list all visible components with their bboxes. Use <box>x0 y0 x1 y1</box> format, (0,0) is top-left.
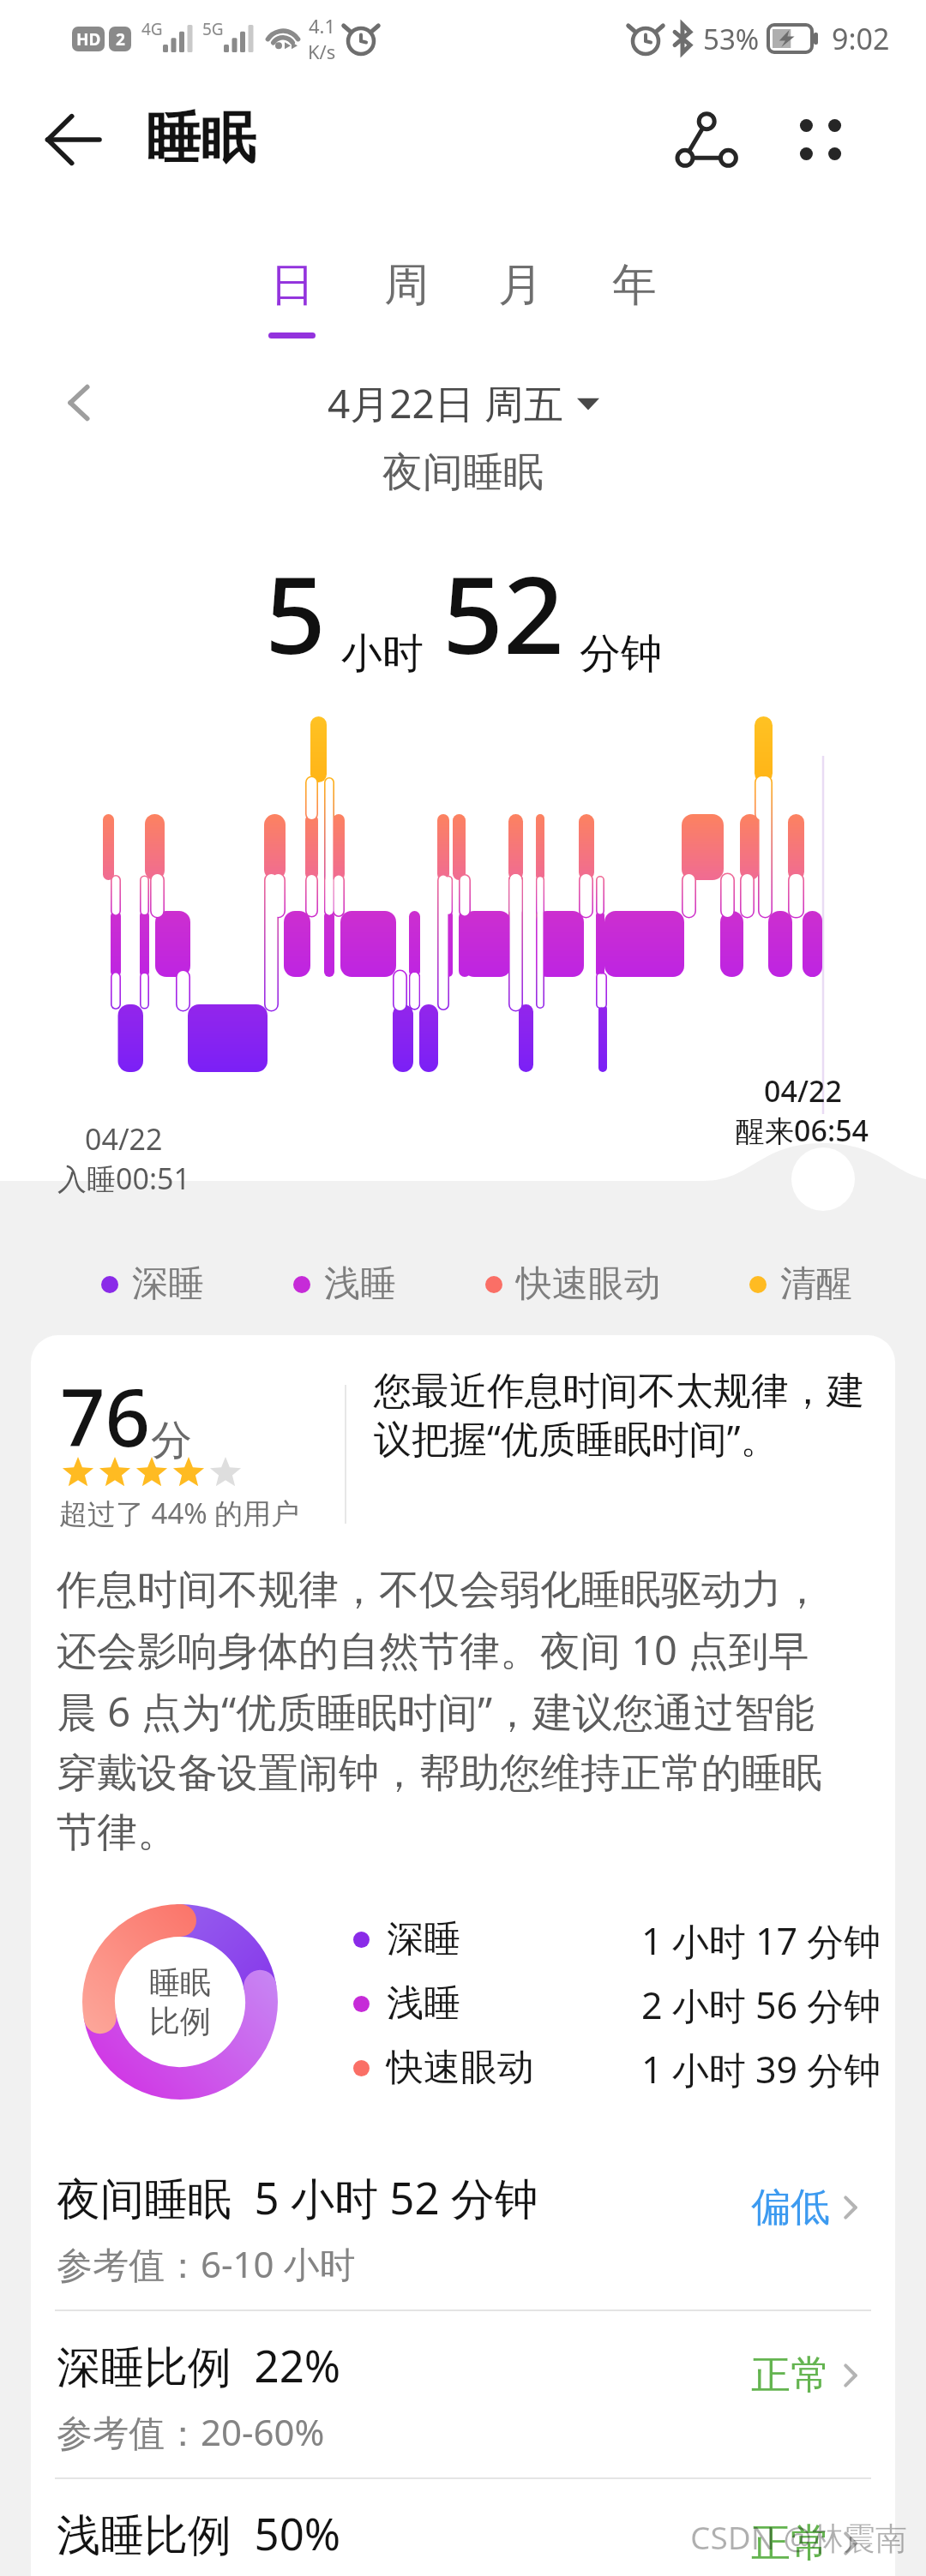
staticText: 1 小时 17 分钟 <box>641 1915 881 1963</box>
staticText: 醒来06:54 <box>736 1111 869 1150</box>
staticText: 深睡 <box>387 1916 460 1962</box>
staticText: 4G <box>141 18 163 40</box>
staticText: 5G <box>202 18 224 40</box>
button[interactable]: 深睡比例 22% <box>31 2311 895 2479</box>
staticText: 正常 <box>751 2519 830 2568</box>
staticText: 2 <box>116 28 125 51</box>
staticText: 睡眠 <box>146 104 256 173</box>
staticText: 超过了 44% 的用户 <box>59 1494 300 1532</box>
staticText: 76 <box>60 1363 151 1470</box>
staticText: 快速眼动 <box>387 2045 534 2091</box>
staticText: 夜间睡眠 5 小时 52 分钟 <box>57 2167 538 2227</box>
staticText: K/s <box>308 39 336 64</box>
staticText: 您最近作息时间不太规律，建议把握“优质睡眠时间”。 <box>374 1368 888 1464</box>
staticText: 年 <box>612 257 657 314</box>
staticText: 月 <box>498 257 543 314</box>
staticText: 深睡 <box>132 1261 204 1307</box>
button[interactable]: Previous day <box>53 376 106 429</box>
staticText: 浅睡 <box>324 1261 396 1307</box>
button[interactable]: Back <box>0 93 146 187</box>
button[interactable]: More options <box>765 93 876 187</box>
staticText: 分 <box>151 1415 192 1466</box>
staticText: 比例 <box>149 2002 211 2040</box>
staticText: 正常 <box>751 2351 830 2400</box>
staticText: 04/22 <box>764 1071 842 1111</box>
staticText: 深睡比例 22% <box>57 2335 341 2395</box>
button[interactable]: 周 <box>349 257 463 346</box>
staticText: 52 <box>442 540 564 685</box>
staticText: 夜间睡眠 <box>0 447 926 498</box>
staticText: 参考值：6-10 小时 <box>57 2239 356 2288</box>
staticText: 1 小时 39 分钟 <box>641 2044 881 2092</box>
staticText: 5 <box>265 540 326 685</box>
button[interactable]: 日 <box>235 257 349 346</box>
staticText: 4.1 <box>309 13 336 39</box>
staticText: 浅睡 <box>387 1980 460 2027</box>
staticText: 参考值：20-60% <box>57 2407 325 2456</box>
staticText: 小时 <box>341 628 424 680</box>
staticText: 分钟 <box>580 628 662 680</box>
button[interactable]: 浅睡比例 50% <box>31 2479 895 2576</box>
staticText: 2 小时 56 分钟 <box>641 1980 881 2028</box>
staticText: 清醒 <box>780 1261 852 1307</box>
button[interactable]: 年 <box>577 257 691 346</box>
staticText: 9:02 <box>832 19 890 58</box>
staticText: 周 <box>384 257 429 314</box>
staticText: 入睡00:51 <box>57 1159 190 1198</box>
staticText: 04/22 <box>85 1119 163 1159</box>
staticText: 日 <box>270 257 315 314</box>
staticText: 睡眠 <box>149 1963 211 2002</box>
button[interactable]: Share <box>653 93 765 187</box>
button[interactable]: 夜间睡眠 5 小时 52 分钟 <box>31 2143 895 2311</box>
button[interactable]: 4月22日 周五 <box>328 376 599 430</box>
button[interactable]: 月 <box>463 257 577 346</box>
staticText: 53% <box>703 20 760 58</box>
staticText: 作息时间不规律，不仅会弱化睡眠驱动力，还会影响身体的自然节律。夜间 10 点到早… <box>57 1565 842 1857</box>
staticText: 快速眼动 <box>516 1261 660 1307</box>
staticText: HD <box>76 28 101 51</box>
staticText: CSDN @林震南 <box>690 2515 907 2559</box>
staticText: 浅睡比例 50% <box>57 2503 341 2563</box>
staticText: 4月22日 周五 <box>328 376 563 430</box>
staticText: 偏低 <box>751 2183 830 2232</box>
